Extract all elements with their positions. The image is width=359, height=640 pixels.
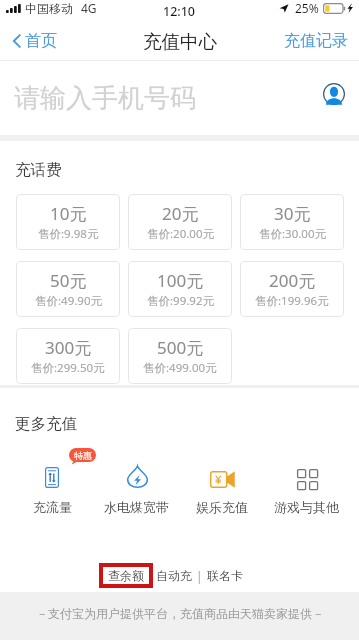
staticText: | xyxy=(196,568,203,584)
staticText: 300元 xyxy=(45,336,92,359)
button[interactable]: 100元 xyxy=(128,261,232,317)
staticText: 首页 xyxy=(25,31,57,51)
staticText: 20元 xyxy=(162,202,199,225)
button[interactable]: 查余额 xyxy=(99,563,153,588)
staticText: 12:10 xyxy=(163,3,196,20)
staticText: 水电煤宽带 xyxy=(104,499,169,515)
button[interactable]: 30元 xyxy=(240,194,344,250)
staticText: 游戏与其他 xyxy=(274,499,339,515)
staticText: 售价:20.00元 xyxy=(147,226,214,242)
staticText: 售价:99.92元 xyxy=(147,293,214,309)
staticText: 50元 xyxy=(50,269,87,292)
staticText: 更多充值 xyxy=(15,414,77,434)
staticText: 售价:49.90元 xyxy=(35,293,102,309)
button[interactable]: 充值记录 xyxy=(274,25,359,57)
button[interactable]: 20元 xyxy=(128,194,232,250)
staticText: 售价:299.50元 xyxy=(31,360,105,376)
staticText: 售价:199.96元 xyxy=(255,293,329,309)
staticText: －支付宝为用户提供平台，充值商品由天猫卖家提供－ xyxy=(36,606,324,621)
button[interactable]: 300元 xyxy=(16,328,120,384)
staticText: 中国移动 xyxy=(25,1,73,16)
staticText: 4G xyxy=(81,0,97,16)
button[interactable]: Choose contact xyxy=(323,83,345,105)
button[interactable]: 首页 xyxy=(0,25,67,57)
staticText: 500元 xyxy=(157,336,204,359)
button[interactable]: 水电煤宽带 xyxy=(94,463,179,515)
staticText: 充话费 xyxy=(15,160,62,180)
button[interactable]: 娱乐充值 xyxy=(179,463,264,515)
staticText: 充流量 xyxy=(33,499,72,515)
button[interactable]: 特惠 xyxy=(10,463,94,515)
button[interactable]: 200元 xyxy=(240,261,344,317)
button[interactable]: 500元 xyxy=(128,328,232,384)
staticText: 充值中心 xyxy=(143,30,217,53)
staticText: 售价:9.98元 xyxy=(38,226,99,242)
staticText: 200元 xyxy=(269,269,316,292)
staticText: 售价:30.00元 xyxy=(259,226,326,242)
staticText: 10元 xyxy=(50,202,87,225)
staticText: 充值记录 xyxy=(284,31,348,51)
staticText: 25% xyxy=(295,0,319,16)
button[interactable]: 10元 xyxy=(16,194,120,250)
staticText: 100元 xyxy=(157,269,204,292)
staticText: 查余额 xyxy=(108,568,144,583)
staticText: 娱乐充值 xyxy=(196,499,248,515)
staticText: 售价:499.00元 xyxy=(143,360,217,376)
button[interactable]: 联名卡 xyxy=(207,568,243,583)
button[interactable]: 50元 xyxy=(16,261,120,317)
staticText: 请输入手机号码 xyxy=(14,82,196,115)
staticText: 30元 xyxy=(274,202,311,225)
staticText: 特惠 xyxy=(74,450,92,461)
button[interactable]: 自动充 xyxy=(156,568,192,583)
button[interactable]: 游戏与其他 xyxy=(264,463,349,515)
